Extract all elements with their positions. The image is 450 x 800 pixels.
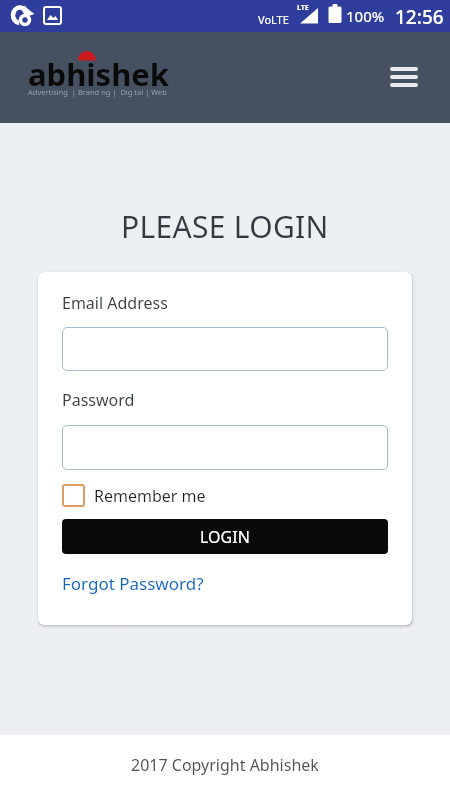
staticText: PLEASE LOGIN — [121, 206, 329, 247]
staticText: Remember me — [94, 485, 206, 507]
staticText: Email Address — [62, 292, 168, 314]
button[interactable]: LOGIN — [62, 519, 388, 554]
staticText: 2017 Copyright Abhishek — [131, 754, 319, 776]
button[interactable] — [62, 484, 85, 507]
button[interactable] — [382, 59, 426, 95]
staticText: 100% — [346, 6, 385, 26]
staticText: Password — [62, 389, 135, 411]
staticText: 12:56 — [395, 4, 444, 30]
staticText: LTE — [297, 3, 309, 13]
staticText: Advertising | Brand ng | Dig tal | Web — [28, 87, 167, 97]
button[interactable]: Forgot Password? — [62, 572, 204, 595]
staticText: LOGIN — [200, 526, 250, 548]
button[interactable] — [62, 425, 388, 470]
staticText: VoLTE — [258, 12, 289, 27]
staticText: abhishek — [28, 53, 170, 95]
button[interactable] — [62, 327, 388, 371]
